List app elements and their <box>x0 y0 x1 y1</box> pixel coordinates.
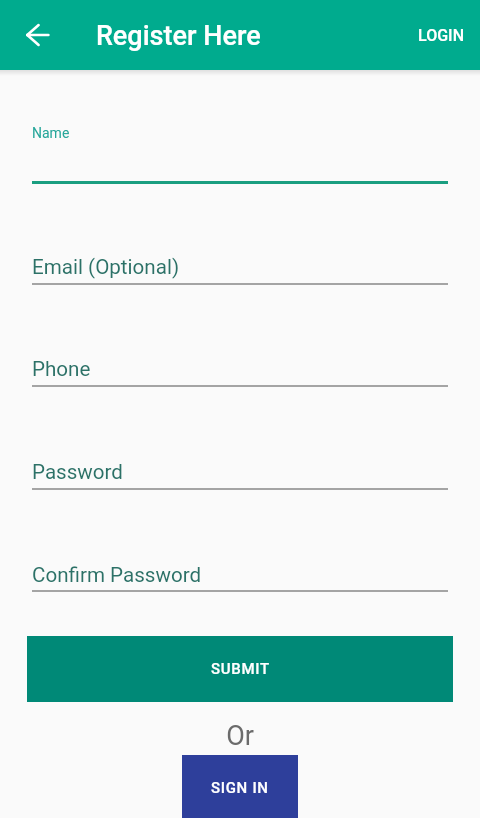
button[interactable]: SUBMIT <box>27 636 453 702</box>
button[interactable]: SIGN IN <box>182 755 298 818</box>
button[interactable]: LOGIN <box>402 14 480 57</box>
staticText: SUBMIT <box>211 660 270 678</box>
staticText: LOGIN <box>418 26 464 45</box>
staticText: Password <box>32 460 123 484</box>
staticText: SIGN IN <box>211 779 269 797</box>
staticText: Phone <box>32 357 91 381</box>
button[interactable]: Name input field <box>32 112 448 184</box>
staticText: Or <box>0 720 480 752</box>
button[interactable]: Confirm Password <box>32 537 448 592</box>
button[interactable]: Phone <box>32 331 448 387</box>
button[interactable]: Email (Optional) <box>32 229 448 285</box>
button[interactable]: Password <box>32 434 448 490</box>
staticText: Confirm Password <box>32 563 202 587</box>
staticText: Email (Optional) <box>32 255 180 279</box>
button[interactable]: Navigate back <box>16 13 60 57</box>
staticText: Name <box>32 125 70 141</box>
staticText: Register Here <box>96 20 261 52</box>
